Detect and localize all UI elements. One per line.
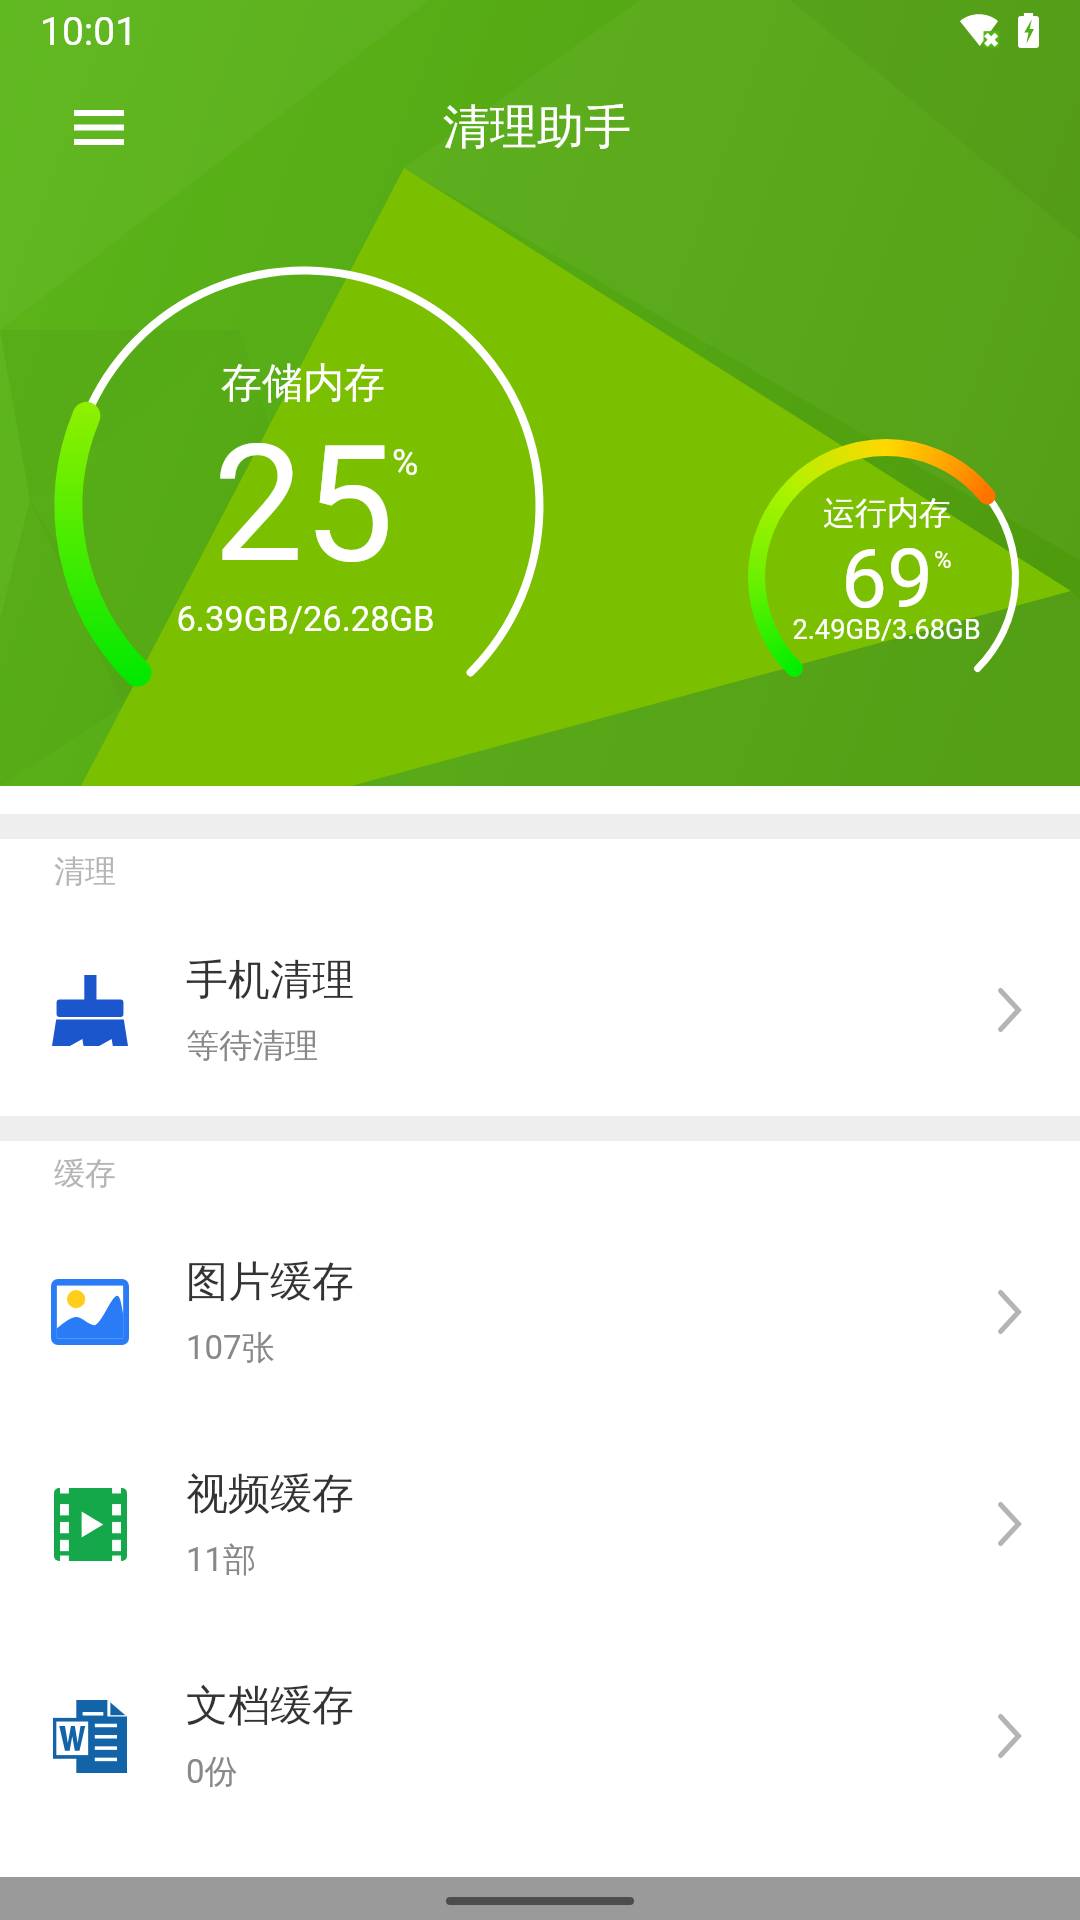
- staticText: 等待清理: [186, 1025, 318, 1067]
- staticText: 清理助手: [443, 98, 631, 157]
- staticText: 2.49GB/3.68GB: [792, 614, 981, 646]
- staticText: %: [934, 546, 952, 574]
- button[interactable]: 图片缓存: [0, 1206, 1080, 1418]
- staticText: 图片缓存: [186, 1256, 354, 1309]
- button[interactable]: 视频缓存: [0, 1418, 1080, 1630]
- staticText: 69: [841, 531, 934, 627]
- staticText: 文档缓存: [186, 1680, 354, 1733]
- staticText: 清理: [54, 852, 116, 891]
- staticText: 10:01: [40, 9, 138, 55]
- staticText: %: [392, 442, 419, 484]
- staticText: 手机清理: [186, 954, 354, 1007]
- staticText: 运行内存: [823, 493, 951, 533]
- staticText: 11部: [186, 1539, 257, 1581]
- staticText: 缓存: [54, 1154, 116, 1193]
- staticText: 视频缓存: [186, 1468, 354, 1521]
- button[interactable]: 菜单: [57, 85, 141, 169]
- button[interactable]: 文档缓存: [0, 1630, 1080, 1842]
- staticText: 107张: [186, 1327, 275, 1369]
- staticText: 6.39GB/26.28GB: [176, 599, 435, 639]
- staticText: 存储内存: [221, 358, 385, 410]
- staticText: 0份: [186, 1751, 238, 1793]
- button[interactable]: 手机清理: [0, 904, 1080, 1116]
- staticText: 25: [213, 411, 394, 600]
